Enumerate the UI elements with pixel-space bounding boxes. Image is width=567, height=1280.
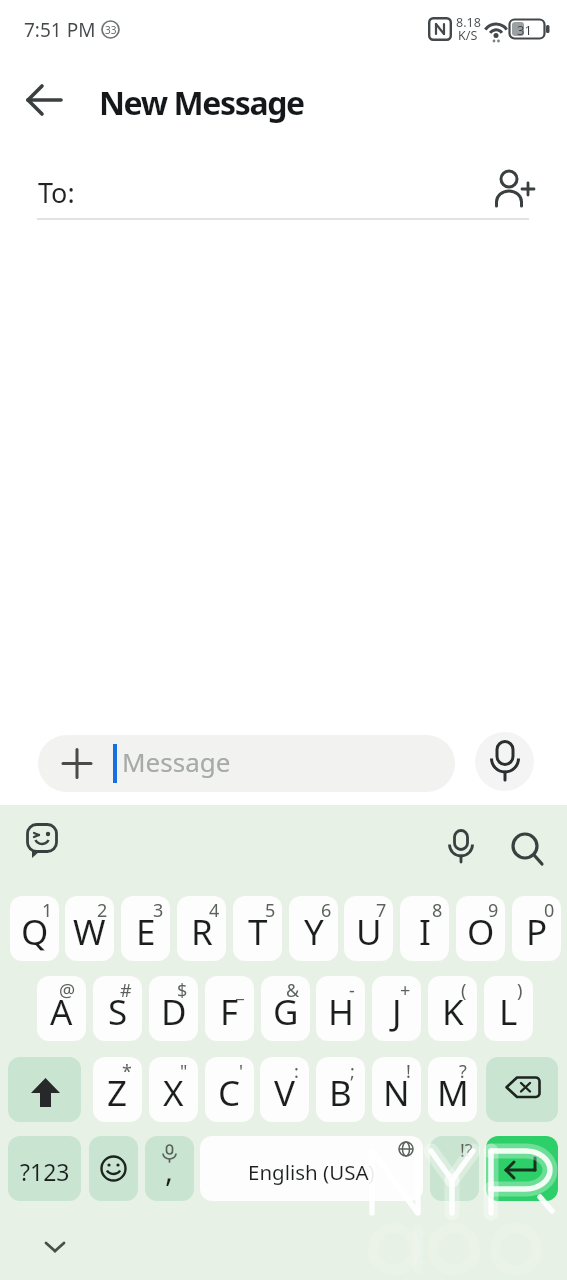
button[interactable]: A — [37, 976, 86, 1041]
button[interactable]: H — [316, 976, 365, 1041]
button[interactable]: T — [233, 896, 282, 961]
staticText: K — [442, 988, 464, 1036]
button[interactable]: Y — [289, 896, 338, 961]
button[interactable]: U — [344, 896, 393, 961]
staticText: 2 — [97, 898, 108, 923]
button[interactable]: G — [261, 976, 310, 1041]
staticText: New Message — [99, 81, 304, 125]
staticText: ' — [239, 1059, 244, 1084]
button[interactable] — [14, 78, 72, 126]
staticText: R — [191, 908, 213, 956]
button[interactable]: D — [149, 976, 198, 1041]
staticText: English (USA) — [248, 1158, 375, 1186]
button[interactable] — [8, 1057, 81, 1122]
staticText: !? — [460, 1138, 473, 1163]
staticText: Z — [107, 1069, 128, 1117]
button[interactable]: J — [372, 976, 421, 1041]
staticText: 0 — [544, 898, 555, 923]
button[interactable] — [16, 815, 70, 869]
staticText: F — [220, 988, 239, 1036]
button[interactable] — [488, 160, 540, 212]
staticText: C — [218, 1069, 241, 1117]
staticText: 3 — [153, 898, 164, 923]
staticText: : — [294, 1059, 299, 1084]
button[interactable]: P — [512, 896, 561, 961]
button[interactable]: L — [484, 976, 533, 1041]
staticText: Y — [304, 908, 324, 956]
staticText: 4 — [209, 898, 220, 923]
button[interactable]: F — [205, 976, 254, 1041]
staticText: K/S — [458, 27, 478, 44]
button[interactable]: B — [316, 1057, 365, 1122]
staticText: 8.18 — [456, 14, 481, 31]
button[interactable] — [89, 1136, 138, 1201]
button[interactable]: M — [428, 1057, 477, 1122]
button[interactable] — [475, 732, 534, 791]
staticText: ? — [459, 1059, 467, 1084]
button[interactable]: K — [428, 976, 477, 1041]
button[interactable]: Message — [38, 735, 455, 792]
button[interactable]: !? — [430, 1136, 479, 1201]
button[interactable]: C — [205, 1057, 254, 1122]
staticText: + — [400, 978, 411, 1003]
staticText: , — [165, 1150, 174, 1191]
button[interactable] — [486, 1136, 558, 1201]
staticText: Q — [21, 908, 49, 956]
staticText: S — [108, 988, 128, 1036]
staticText: & — [286, 978, 300, 1003]
staticText: A — [50, 988, 73, 1036]
staticText: 6 — [321, 898, 332, 923]
staticText: 5 — [265, 898, 276, 923]
staticText: V — [274, 1069, 296, 1117]
button[interactable] — [486, 1057, 558, 1122]
button[interactable] — [502, 820, 552, 870]
staticText: G — [273, 988, 299, 1036]
staticText: B — [329, 1069, 352, 1117]
staticText: 33 — [105, 23, 117, 37]
staticText: H — [328, 988, 354, 1036]
staticText: J — [392, 988, 402, 1036]
button[interactable]: I — [400, 896, 449, 961]
button[interactable] — [34, 1228, 76, 1264]
staticText: 7 — [376, 898, 387, 923]
button[interactable]: V — [260, 1057, 309, 1122]
button[interactable]: E — [121, 896, 170, 961]
button[interactable]: O — [456, 896, 505, 961]
staticText: @ — [59, 978, 76, 1003]
button[interactable]: N — [372, 1057, 421, 1122]
staticText: # — [120, 978, 132, 1003]
staticText: M — [437, 1069, 469, 1117]
staticText: _ — [236, 978, 244, 1003]
staticText: 1 — [42, 898, 53, 923]
button[interactable]: English (USA) — [200, 1136, 423, 1201]
button[interactable]: R — [177, 896, 226, 961]
staticText: * — [122, 1059, 132, 1084]
button[interactable]: , — [145, 1136, 194, 1201]
staticText: X — [163, 1069, 184, 1117]
staticText: Message — [122, 744, 231, 779]
staticText: P — [526, 908, 548, 956]
staticText: 7:51 PM — [24, 17, 96, 43]
staticText: W — [73, 908, 106, 956]
staticText: O — [467, 908, 495, 956]
button[interactable]: Q — [10, 896, 59, 961]
button[interactable]: X — [149, 1057, 198, 1122]
staticText: ; — [350, 1059, 355, 1084]
staticText: ) — [517, 978, 523, 1003]
staticText: " — [180, 1059, 188, 1084]
staticText: E — [136, 908, 156, 956]
staticText: 9 — [488, 898, 499, 923]
staticText: U — [356, 908, 382, 956]
button[interactable]: Z — [93, 1057, 142, 1122]
button[interactable] — [436, 818, 486, 868]
button[interactable]: W — [65, 896, 114, 961]
button[interactable]: ?123 — [8, 1136, 81, 1201]
staticText: 31 — [517, 21, 532, 39]
staticText: 8 — [432, 898, 443, 923]
staticText: ( — [461, 978, 467, 1003]
button[interactable]: S — [93, 976, 142, 1041]
staticText: To: — [38, 174, 75, 211]
staticText: ! — [406, 1059, 411, 1084]
staticText: . — [447, 1148, 456, 1189]
staticText: $ — [177, 978, 188, 1003]
